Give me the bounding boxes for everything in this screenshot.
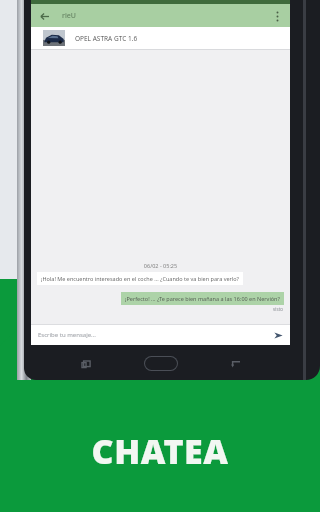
button[interactable]: OPEL ASTRA GTC 1.6 <box>31 27 290 49</box>
button[interactable]: Recent apps <box>76 353 96 373</box>
button[interactable]: More options <box>268 7 286 25</box>
staticText: CHATEA <box>0 428 320 474</box>
staticText: rieU <box>62 11 77 21</box>
button[interactable]: Home <box>142 353 180 373</box>
button[interactable]: ¡Hola! Me encuentro interesado en el coc… <box>41 275 239 282</box>
staticText: ¡Perfecto! ... ¿Te parece bien mañana a … <box>125 295 280 302</box>
staticText: visto <box>31 306 283 312</box>
button[interactable]: Send <box>270 327 286 343</box>
button[interactable]: Escribe tu mensaje... <box>38 331 270 339</box>
staticText: 06/02 - 05:25 <box>31 262 290 269</box>
button[interactable]: Back <box>34 6 54 26</box>
button[interactable]: Back <box>225 353 245 373</box>
button[interactable]: ¡Perfecto! ... ¿Te parece bien mañana a … <box>125 295 280 302</box>
staticText: OPEL ASTRA GTC 1.6 <box>75 34 138 43</box>
staticText: ¡Hola! Me encuentro interesado en el coc… <box>41 275 239 282</box>
